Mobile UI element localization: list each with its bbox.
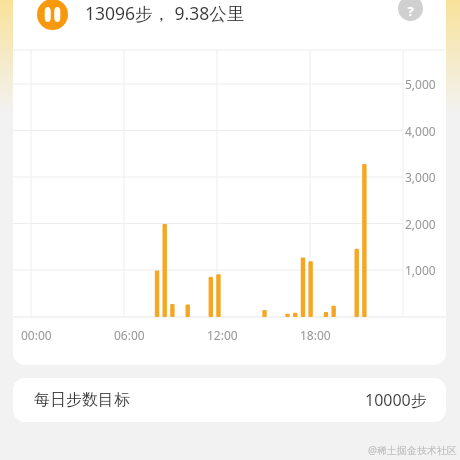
staticText: 每日步数目标 [34,390,130,410]
staticText: 1,000 [405,262,436,278]
staticText: 5,000 [405,76,436,92]
staticText: 12:00 [207,327,238,343]
staticText: 4,000 [405,123,436,139]
staticText: 3,000 [405,169,436,185]
staticText: @稀土掘金技术社区 [368,443,457,457]
button[interactable]: ? [398,0,423,21]
staticText: 2,000 [405,216,436,232]
staticText: 10000步 [365,389,427,411]
staticText: 00:00 [21,327,52,343]
staticText: 06:00 [114,327,145,343]
staticText: ? [407,2,414,20]
button[interactable]: 每日步数目标 [13,378,446,422]
button[interactable] [37,0,68,30]
staticText: 18:00 [300,327,331,343]
staticText: 13096步， 9.38公里 [85,1,245,25]
